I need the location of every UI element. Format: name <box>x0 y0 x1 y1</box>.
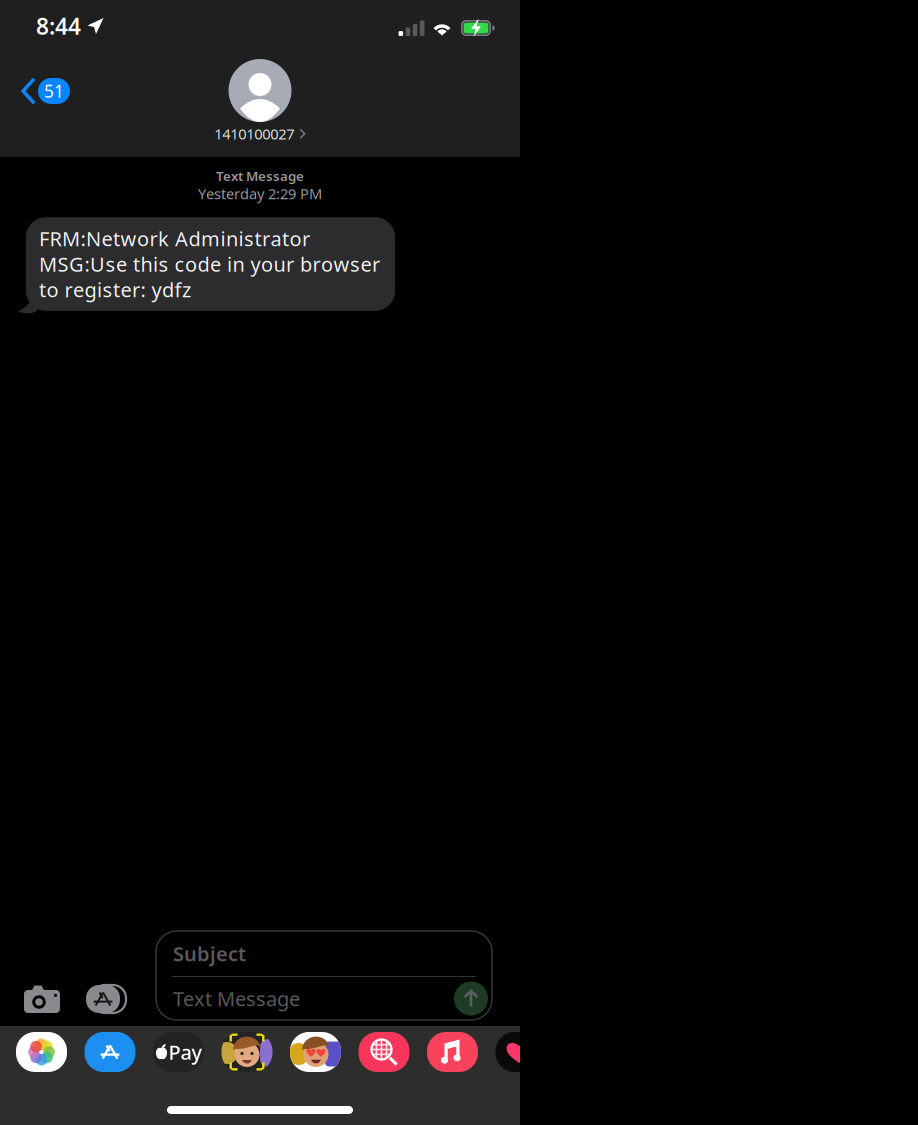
button[interactable]: Stickers <box>290 1032 341 1072</box>
button[interactable]: Digital Touch <box>495 1032 546 1072</box>
button[interactable]: Memoji <box>221 1032 272 1072</box>
staticText: Yesterday 2:29 PM <box>198 184 322 203</box>
button[interactable]: Camera <box>24 985 60 1020</box>
button[interactable]: Apple Pay <box>153 1032 204 1072</box>
button[interactable]: Photos <box>16 1032 67 1072</box>
button[interactable]: Back to Messages, 51 unread <box>0 70 80 112</box>
staticText: FRM:Network Administrator MSG:Use this c… <box>39 225 380 303</box>
button[interactable]: Image search <box>358 1032 409 1072</box>
button[interactable]: App Store <box>84 1032 135 1072</box>
staticText: Pay <box>169 1039 203 1065</box>
staticText: 1410100027 <box>214 124 294 143</box>
staticText: 51 <box>44 79 64 102</box>
staticText: Subject <box>173 940 246 967</box>
button[interactable]: Apps <box>86 985 126 1020</box>
button[interactable]: Music <box>427 1032 478 1072</box>
staticText: 8:44 <box>36 11 81 41</box>
staticText: Text Message <box>173 985 300 1012</box>
staticText: Text Message <box>216 167 304 185</box>
